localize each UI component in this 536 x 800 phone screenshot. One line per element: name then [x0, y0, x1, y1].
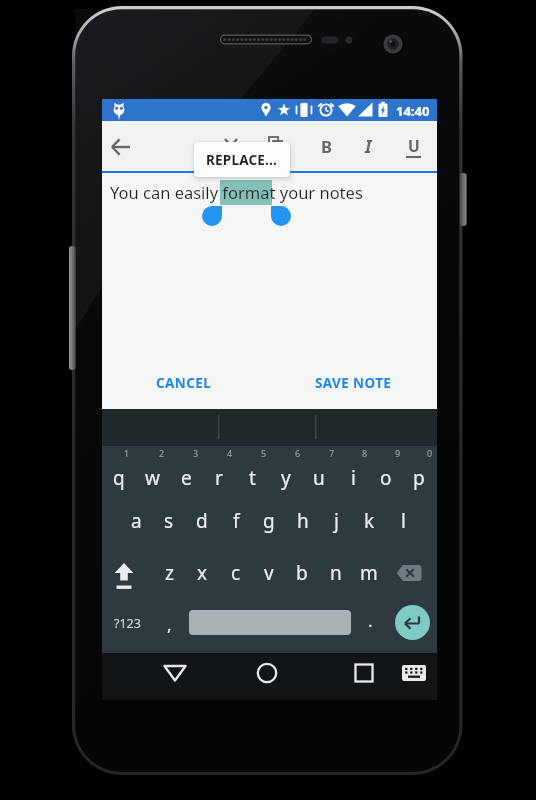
button[interactable]: y [271, 461, 301, 495]
staticText: i [351, 465, 356, 491]
staticText: 7 [329, 447, 335, 459]
staticText: y [281, 465, 291, 491]
staticText: ?123 [114, 615, 141, 632]
button[interactable]: d [187, 504, 217, 538]
staticText: U [408, 135, 420, 156]
staticText: d [196, 508, 208, 534]
staticText: 1 [124, 447, 130, 459]
button[interactable]: c [221, 556, 251, 590]
staticText: You can easily format your notes [110, 181, 363, 203]
staticText: 3 [193, 447, 199, 459]
staticText: t [249, 465, 256, 491]
staticText: B [321, 135, 332, 157]
button[interactable]: B [312, 132, 340, 160]
button[interactable]: g [254, 504, 284, 538]
button[interactable]: t [237, 461, 267, 495]
staticText: k [364, 508, 375, 534]
button[interactable]: r [204, 461, 234, 495]
button[interactable]: b [287, 556, 317, 590]
staticText: 9 [395, 447, 401, 459]
button[interactable]: REPLACE... [194, 142, 290, 177]
button[interactable] [395, 605, 430, 640]
button[interactable]: . [360, 608, 380, 632]
button[interactable]: z [154, 556, 184, 590]
button[interactable] [106, 560, 144, 600]
staticText: 4 [227, 447, 233, 459]
staticText: , [167, 613, 172, 636]
button[interactable]: , [159, 612, 179, 636]
staticText: 14:40 [396, 102, 430, 119]
staticText: SAVE NOTE [315, 374, 392, 392]
staticText: f [233, 508, 240, 534]
staticText: x [197, 560, 208, 586]
staticText: 2 [159, 447, 165, 459]
staticText: REPLACE... [206, 151, 278, 169]
staticText: 6 [295, 447, 301, 459]
button[interactable]: e [171, 461, 201, 495]
staticText: s [164, 508, 174, 534]
button[interactable]: l [388, 504, 418, 538]
button[interactable]: q [104, 461, 134, 495]
staticText: m [360, 560, 378, 586]
staticText: I [365, 135, 372, 158]
button[interactable]: k [354, 504, 384, 538]
button[interactable]: a [121, 504, 151, 538]
button[interactable] [160, 658, 190, 688]
button[interactable]: h [288, 504, 318, 538]
staticText: j [334, 508, 339, 534]
button[interactable]: I [354, 132, 382, 160]
staticText: o [380, 465, 392, 491]
button[interactable]: n [321, 556, 351, 590]
staticText: h [297, 508, 309, 534]
button[interactable] [349, 658, 379, 688]
button[interactable]: CANCEL [144, 374, 224, 392]
staticText: 5 [261, 447, 267, 459]
button[interactable]: ?123 [107, 614, 147, 632]
staticText: a [131, 508, 142, 534]
staticText: n [330, 560, 342, 586]
staticText: CANCEL [156, 374, 212, 392]
staticText: g [263, 508, 275, 534]
staticText: . [368, 609, 373, 632]
button[interactable] [392, 563, 428, 599]
button[interactable] [252, 658, 282, 688]
button[interactable]: u [304, 461, 334, 495]
button[interactable]: j [321, 504, 351, 538]
button[interactable]: v [254, 556, 284, 590]
button[interactable] [400, 662, 428, 684]
staticText: z [165, 560, 174, 586]
staticText: q [113, 465, 125, 491]
staticText: p [413, 465, 425, 491]
button[interactable]: p [404, 461, 434, 495]
button[interactable]: U [399, 132, 427, 160]
button[interactable] [107, 133, 135, 161]
staticText: c [231, 560, 241, 586]
button[interactable]: s [154, 504, 184, 538]
staticText: w [145, 465, 160, 491]
button[interactable]: x [187, 556, 217, 590]
staticText: v [264, 560, 274, 586]
button[interactable]: i [338, 461, 368, 495]
button[interactable]: SAVE NOTE [313, 374, 393, 392]
button[interactable]: f [221, 504, 251, 538]
button[interactable] [189, 610, 351, 635]
staticText: u [313, 465, 325, 491]
staticText: 8 [362, 447, 368, 459]
staticText: b [296, 560, 308, 586]
staticText: l [401, 508, 406, 534]
button[interactable]: o [371, 461, 401, 495]
button[interactable]: m [354, 556, 384, 590]
button[interactable]: w [137, 461, 167, 495]
staticText: 0 [427, 447, 433, 459]
staticText: e [181, 465, 192, 491]
staticText: r [215, 465, 223, 491]
